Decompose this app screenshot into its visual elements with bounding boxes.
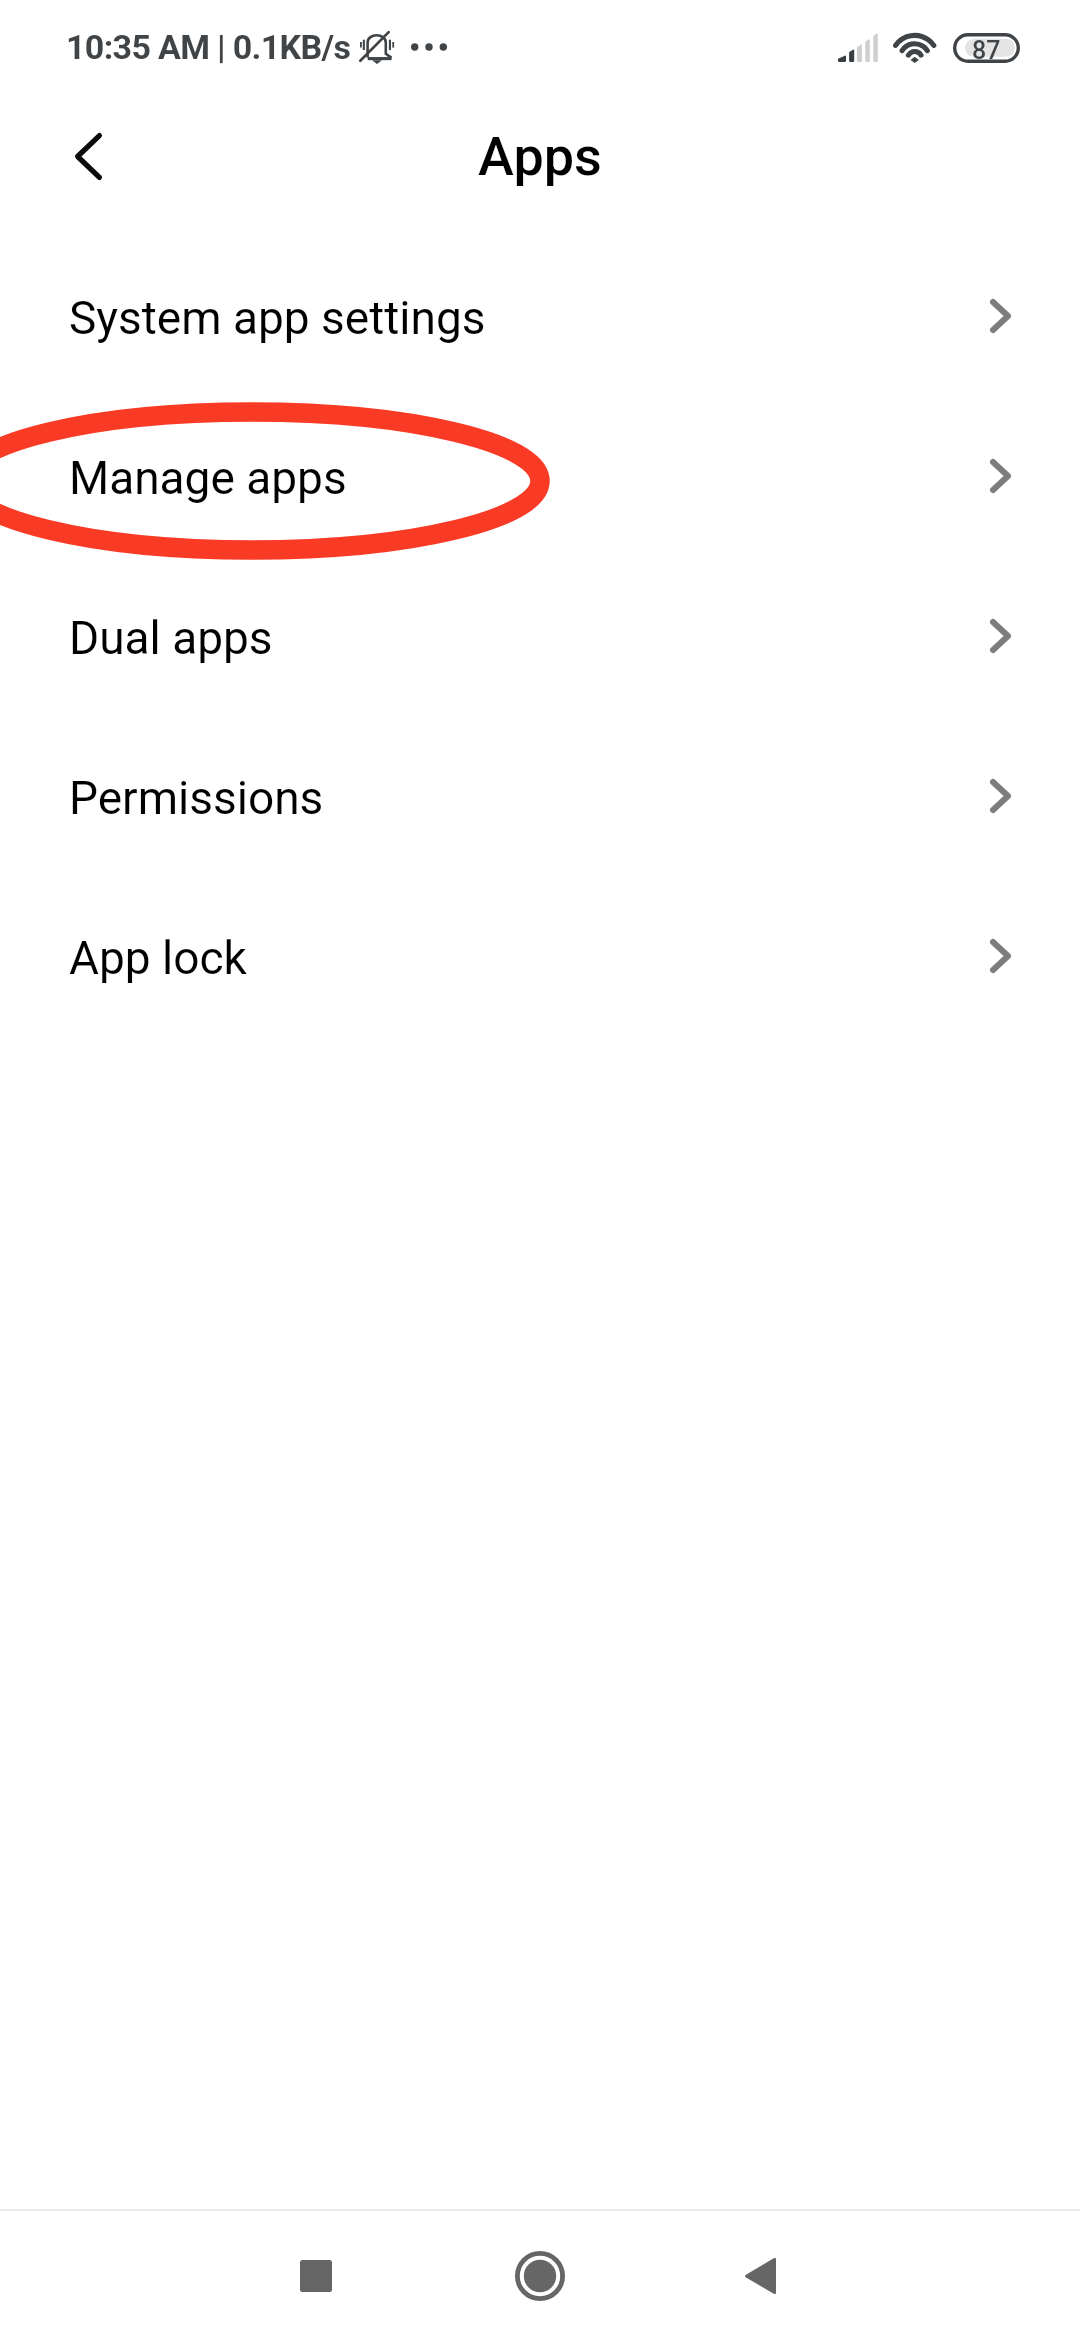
button[interactable]: Permissions xyxy=(0,718,1080,878)
button[interactable]: Home xyxy=(450,2211,630,2340)
staticText: App lock xyxy=(69,931,990,985)
button[interactable]: App lock xyxy=(0,878,1080,1038)
staticText: System app settings xyxy=(69,291,990,345)
staticText: 87 xyxy=(972,36,1001,63)
staticText: 10:35 AM | 0.1KB/s xyxy=(66,27,351,67)
button[interactable]: Recent apps xyxy=(226,2211,406,2340)
staticText: Apps xyxy=(478,125,602,188)
button[interactable]: Dual apps xyxy=(0,558,1080,718)
button[interactable]: System app settings xyxy=(0,238,1080,398)
button[interactable]: Manage apps xyxy=(0,398,1080,558)
staticText: Permissions xyxy=(69,771,990,825)
staticText: Dual apps xyxy=(69,611,990,665)
button[interactable]: Back xyxy=(670,2211,850,2340)
staticText: Manage apps xyxy=(69,451,990,505)
button[interactable]: Back xyxy=(44,112,132,200)
